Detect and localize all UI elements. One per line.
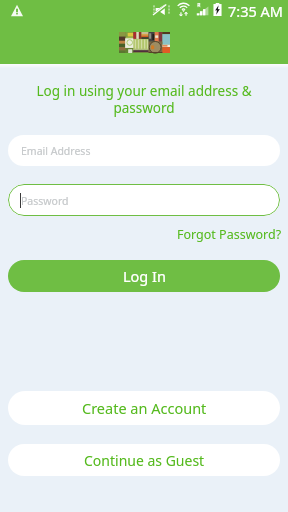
other: Sound off — [153, 3, 172, 16]
staticText: Continue as Guest — [84, 451, 205, 470]
button[interactable]: Log In — [8, 260, 280, 292]
other: Mobile signal, roaming — [196, 3, 209, 16]
other: Wi-Fi — [176, 3, 191, 16]
staticText: Log In — [123, 266, 166, 286]
button[interactable]: Password — [8, 184, 280, 216]
button[interactable]: Continue as Guest — [8, 444, 280, 476]
other: Warning — [11, 4, 23, 17]
staticText: Create an Account — [82, 398, 207, 418]
staticText: Log in using your email address & passwo… — [24, 82, 264, 117]
other: Battery charging — [213, 3, 222, 16]
staticText: Email Address — [21, 144, 91, 158]
staticText: 7:35 AM — [228, 1, 283, 21]
other: App logo — [119, 32, 170, 53]
button[interactable]: Forgot Password? — [177, 226, 288, 243]
staticText: Password — [21, 194, 69, 208]
button[interactable]: Email Address — [8, 135, 280, 166]
button[interactable]: Create an Account — [8, 391, 280, 425]
staticText: Forgot Password? — [177, 226, 282, 243]
